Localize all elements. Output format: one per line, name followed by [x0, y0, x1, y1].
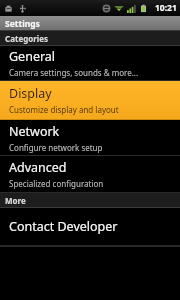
button[interactable]: General: [0, 46, 180, 80]
staticText: General: [9, 48, 56, 65]
staticText: Customize display and layout: [9, 104, 119, 115]
button[interactable]: Advanced: [0, 156, 180, 192]
staticText: Contact Developer: [9, 218, 118, 235]
staticText: Display: [9, 85, 52, 102]
button[interactable]: Network: [0, 120, 180, 155]
staticText: Specialized configuration: [9, 178, 104, 189]
staticText: Advanced: [9, 159, 67, 176]
staticText: Configure network setup: [9, 142, 103, 153]
staticText: Categories: [5, 33, 48, 44]
staticText: Settings: [5, 18, 40, 30]
staticText: Camera settings, sounds & more...: [9, 67, 139, 78]
button[interactable]: Display: [0, 81, 180, 119]
staticText: 10:21: [155, 2, 177, 14]
staticText: More: [5, 195, 26, 206]
staticText: Network: [9, 123, 60, 140]
button[interactable]: Contact Developer: [0, 208, 180, 245]
